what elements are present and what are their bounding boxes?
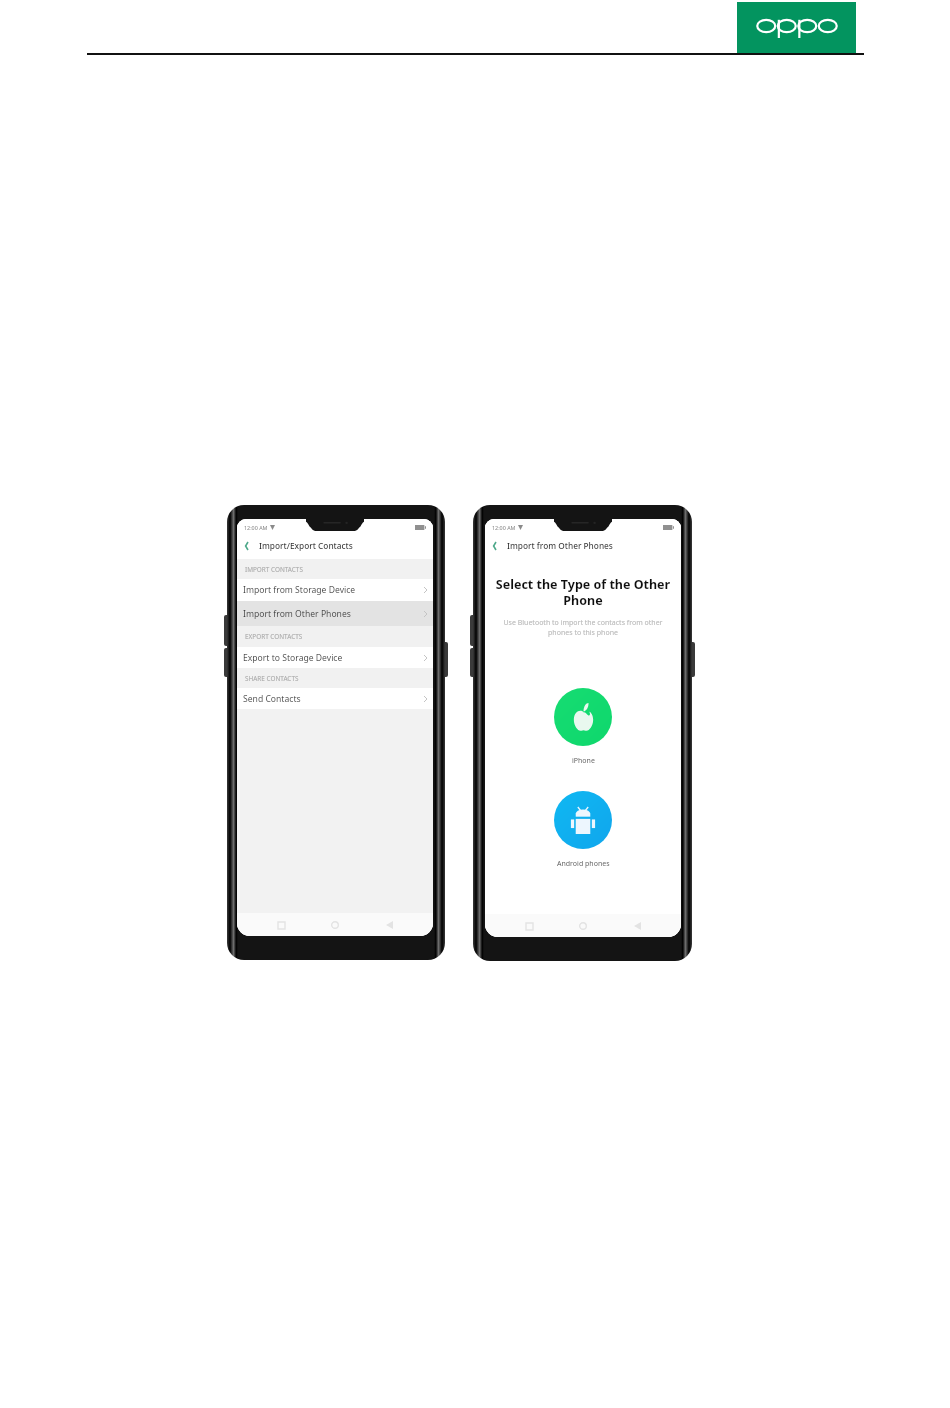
- staticText: Export to Storage Device: [243, 652, 343, 664]
- staticText: Import from Other Phones: [243, 608, 351, 620]
- button[interactable]: Import from Other Phones: [237, 601, 433, 626]
- button[interactable]: Import from Storage Device: [237, 579, 433, 601]
- button[interactable]: Back: [627, 916, 647, 936]
- staticText: 12:00 AM: [244, 524, 268, 531]
- button[interactable]: Export to Storage Device: [237, 647, 433, 668]
- button[interactable]: Back: [379, 915, 399, 935]
- button[interactable]: Back: [488, 539, 501, 552]
- staticText: SHARE CONTACTS: [245, 674, 299, 683]
- staticText: Import/Export Contacts: [259, 540, 353, 551]
- button[interactable]: Android phones: [554, 791, 612, 869]
- button[interactable]: Recents: [519, 916, 539, 936]
- staticText: Import from Storage Device: [243, 584, 356, 596]
- staticText: Select the Type of the Other Phone: [495, 576, 671, 609]
- button[interactable]: iPhone: [554, 688, 612, 766]
- staticText: 12:00 AM: [492, 524, 516, 531]
- staticText: Import from Other Phones: [507, 540, 613, 551]
- button[interactable]: Send Contacts: [237, 688, 433, 709]
- staticText: IMPORT CONTACTS: [245, 565, 303, 574]
- staticText: Use Bluetooth to import the contacts fro…: [497, 618, 669, 638]
- button[interactable]: Recents: [271, 915, 291, 935]
- staticText: Send Contacts: [243, 693, 301, 705]
- button[interactable]: Home: [325, 915, 345, 935]
- staticText: iPhone: [572, 756, 595, 766]
- button[interactable]: Back: [240, 539, 253, 552]
- button[interactable]: Home: [573, 916, 593, 936]
- staticText: Android phones: [557, 859, 610, 869]
- staticText: EXPORT CONTACTS: [245, 632, 303, 641]
